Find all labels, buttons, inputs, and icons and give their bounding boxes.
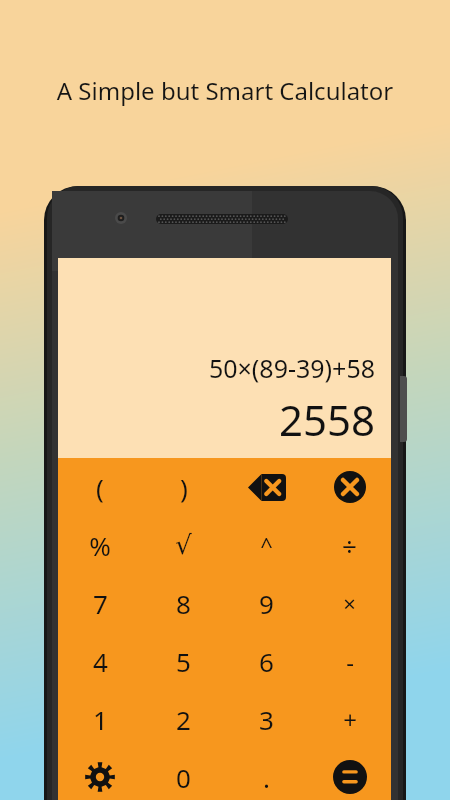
button[interactable]: Backspace (225, 458, 308, 516)
button[interactable]: . (225, 748, 308, 800)
staticText: 8 (176, 586, 191, 621)
staticText: . (263, 760, 270, 795)
button[interactable]: 1 (58, 690, 142, 748)
staticText: 2 (176, 702, 191, 737)
staticText: 50×(89-39)+58 (58, 351, 375, 385)
staticText: √ (175, 530, 192, 560)
staticText: 9 (259, 586, 274, 621)
staticText: 1 (93, 702, 108, 737)
staticText: 3 (259, 702, 274, 737)
button[interactable]: 5 (142, 632, 225, 690)
button[interactable]: ) (142, 458, 225, 516)
staticText: 5 (176, 644, 191, 679)
staticText: ÷ (342, 528, 357, 563)
staticText: × (343, 588, 356, 618)
button[interactable]: 6 (225, 632, 308, 690)
button[interactable]: ^ (225, 516, 308, 574)
button[interactable]: % (58, 516, 142, 574)
button[interactable]: 3 (225, 690, 308, 748)
button[interactable]: √ (142, 516, 225, 574)
button[interactable]: - (308, 632, 391, 690)
staticText: ) (180, 470, 188, 505)
button[interactable]: Clear all (308, 458, 391, 516)
staticText: 2558 (58, 391, 375, 448)
staticText: ^ (260, 530, 273, 560)
staticText: A Simple but Smart Calculator (0, 74, 450, 107)
staticText: 0 (176, 760, 191, 795)
staticText: ( (96, 470, 104, 505)
button[interactable]: ÷ (308, 516, 391, 574)
button[interactable]: Settings (58, 748, 142, 800)
button[interactable]: 4 (58, 632, 142, 690)
button[interactable]: × (308, 574, 391, 632)
staticText: - (346, 645, 354, 678)
button[interactable]: 8 (142, 574, 225, 632)
staticText: + (343, 703, 357, 736)
staticText: 7 (93, 586, 108, 621)
staticText: 6 (259, 644, 274, 679)
button[interactable]: 2 (142, 690, 225, 748)
staticText: 4 (93, 644, 108, 679)
button[interactable]: ( (58, 458, 142, 516)
button[interactable]: 9 (225, 574, 308, 632)
button[interactable]: 0 (142, 748, 225, 800)
button[interactable]: Equals (308, 748, 391, 800)
staticText: % (89, 528, 111, 563)
button[interactable]: 7 (58, 574, 142, 632)
button[interactable]: + (308, 690, 391, 748)
